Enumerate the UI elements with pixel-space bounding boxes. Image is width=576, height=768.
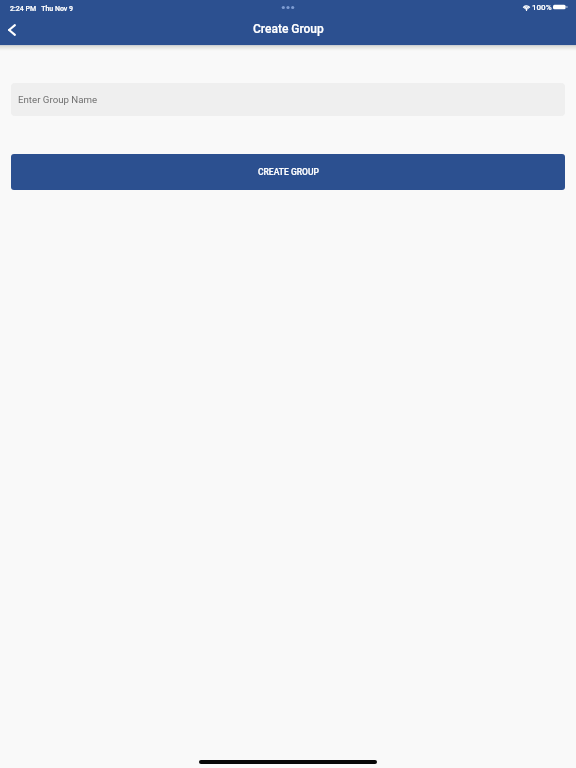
button[interactable]: CREATE GROUP	[11, 154, 565, 190]
button[interactable]: Back	[0, 16, 24, 45]
staticText: 100%	[532, 3, 552, 12]
staticText: 2:24 PM Thu Nov 9	[10, 5, 74, 13]
staticText: Create Group	[253, 22, 324, 36]
staticText: Enter Group Name	[18, 94, 98, 105]
button[interactable]: Enter Group Name	[11, 83, 565, 116]
staticText: CREATE GROUP	[258, 167, 319, 177]
